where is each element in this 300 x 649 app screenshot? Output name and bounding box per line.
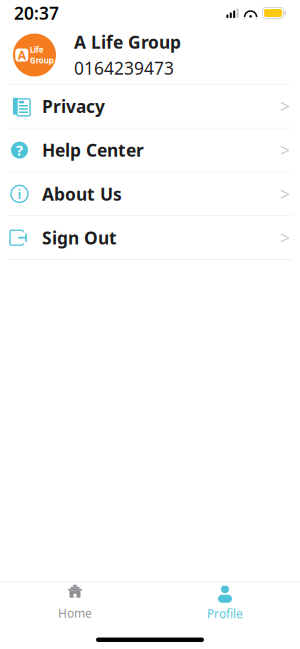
button[interactable]: Privacy <box>0 85 300 128</box>
staticText: Profile <box>207 606 243 622</box>
staticText: > <box>280 182 290 205</box>
button[interactable]: Profile <box>150 582 300 626</box>
staticText: A <box>18 47 26 63</box>
staticText: > <box>280 226 290 249</box>
staticText: Life <box>30 44 44 55</box>
staticText: About Us <box>42 182 122 205</box>
staticText: ? <box>16 140 23 160</box>
staticText: A Life Group <box>74 30 181 53</box>
button[interactable]: i <box>0 172 300 215</box>
button[interactable]: Sign Out <box>0 216 300 259</box>
staticText: Sign Out <box>42 226 117 249</box>
staticText: 20:37 <box>14 1 59 24</box>
staticText: > <box>280 95 290 118</box>
staticText: Privacy <box>42 95 105 118</box>
staticText: Help Center <box>42 139 144 162</box>
staticText: i <box>17 185 21 203</box>
staticText: Group <box>30 55 54 66</box>
button[interactable]: Home <box>0 582 150 626</box>
staticText: Home <box>58 605 92 621</box>
button[interactable]: ? <box>0 129 300 172</box>
staticText: 0164239473 <box>74 56 174 79</box>
staticText: > <box>280 139 290 162</box>
